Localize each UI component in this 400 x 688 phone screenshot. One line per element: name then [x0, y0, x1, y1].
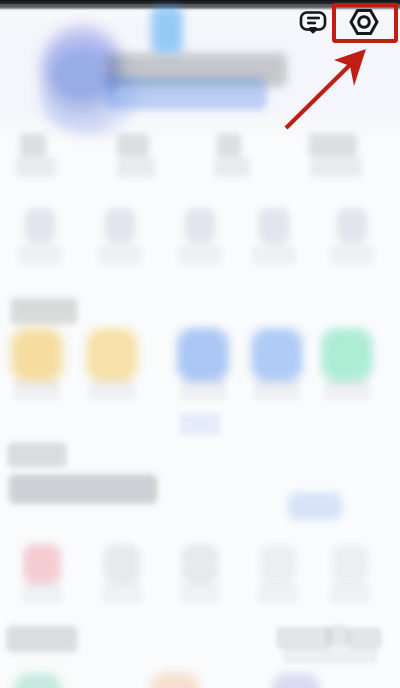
button[interactable]: Settings — [348, 7, 380, 37]
button[interactable]: Messages — [298, 7, 328, 37]
